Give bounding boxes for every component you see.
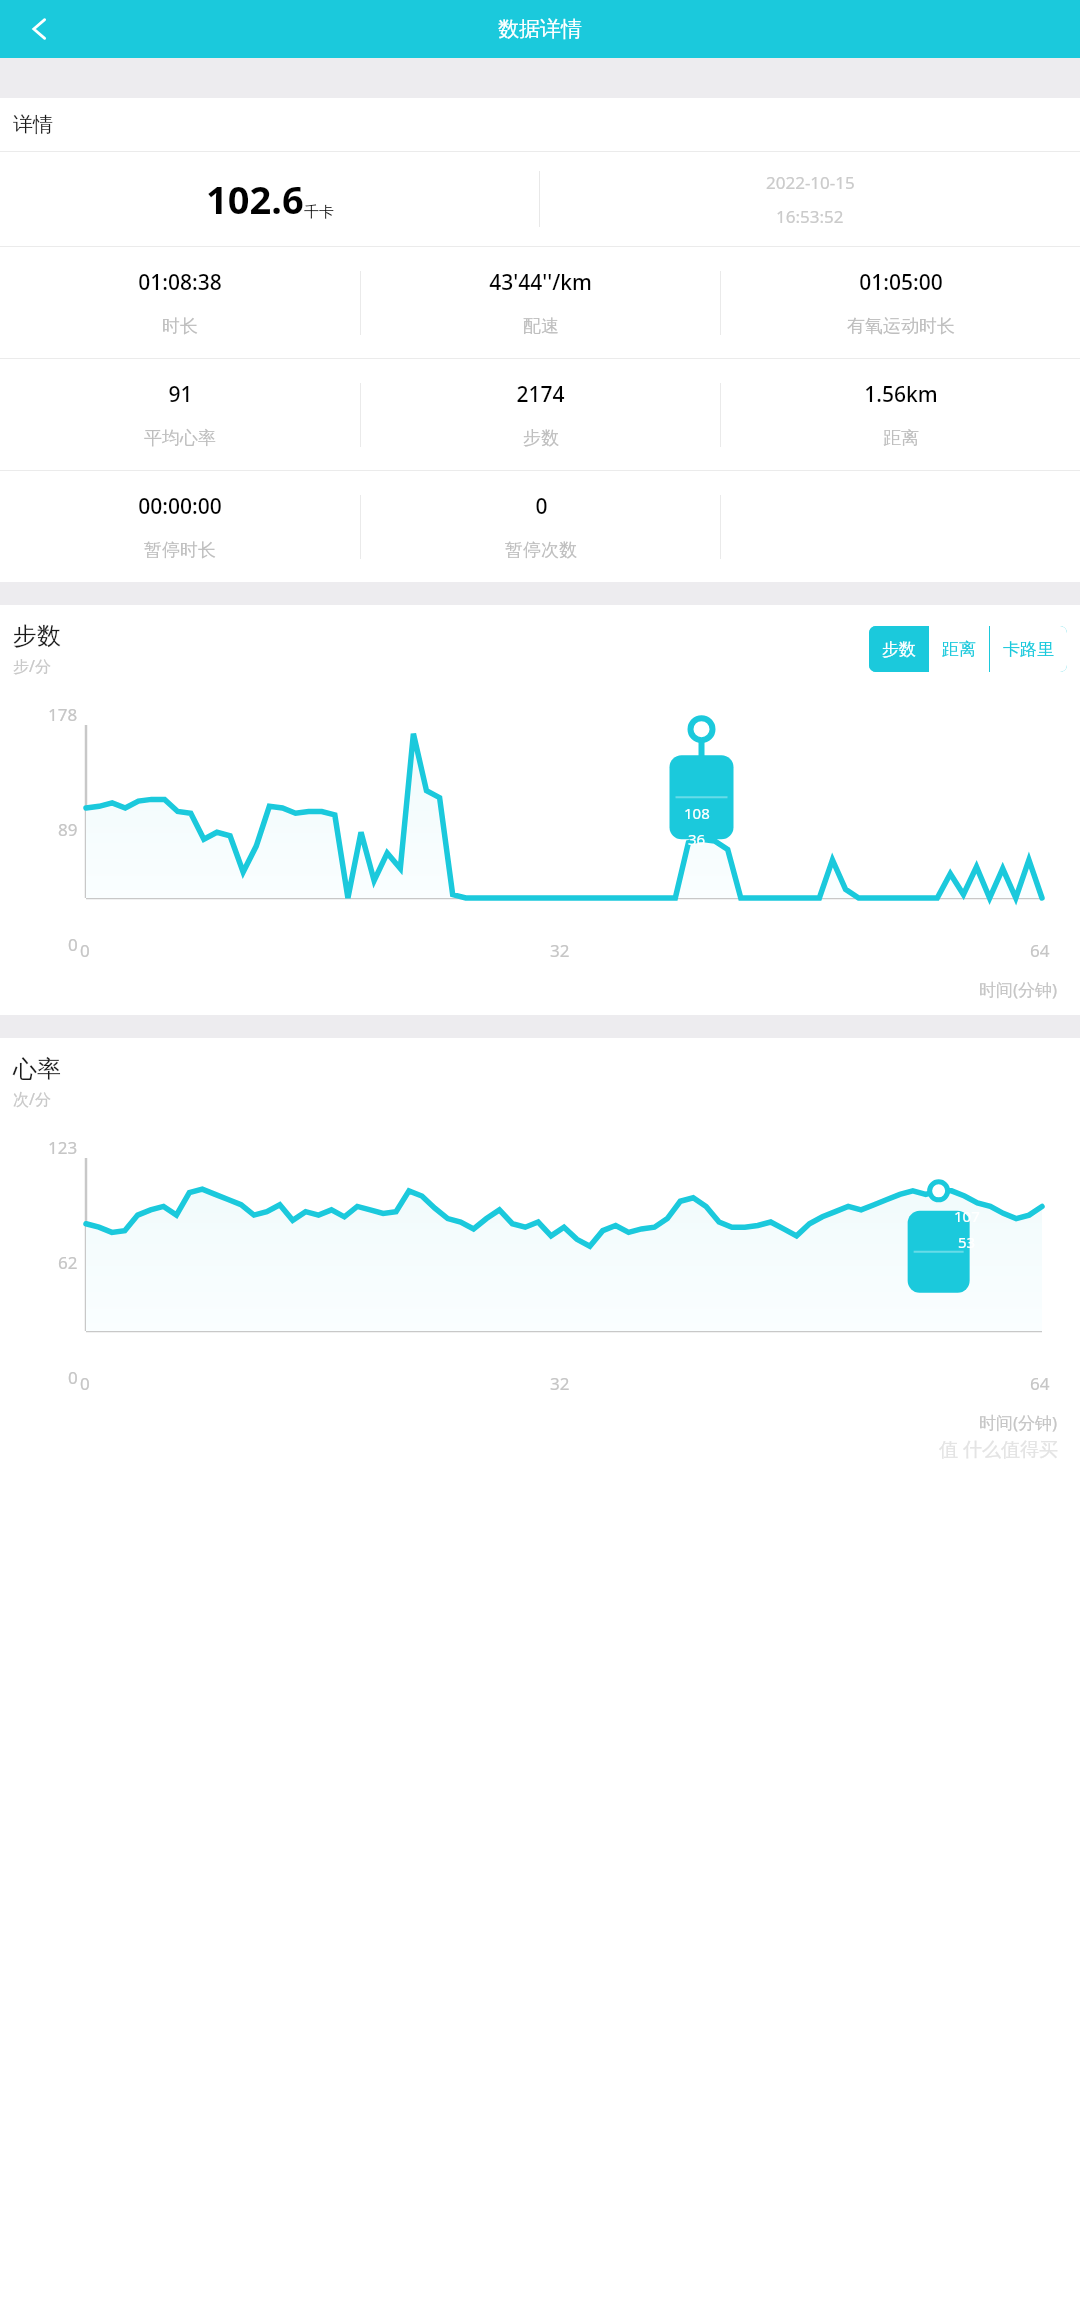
staticText: 步/分 [13, 655, 51, 677]
button[interactable]: Back [14, 3, 66, 55]
staticText: 数据详情 [498, 16, 582, 42]
staticText: 次/分 [13, 1088, 51, 1110]
staticText: 千卡 [304, 203, 334, 222]
staticText: 108 [684, 803, 710, 823]
staticText: 00:00:00 [138, 492, 222, 521]
staticText: 102.6 [206, 173, 304, 225]
staticText: 123 [48, 1136, 78, 1159]
staticText: 2174 [516, 380, 565, 409]
staticText: 步数 [523, 427, 559, 450]
staticText: 暂停次数 [505, 539, 577, 562]
staticText: 平均心率 [144, 427, 216, 450]
staticText: 步数 [882, 639, 916, 660]
staticText: 0 [68, 1366, 78, 1389]
staticText: 有氧运动时长 [847, 315, 955, 338]
staticText: 0 [535, 492, 548, 521]
staticText: 时间(分钟) [979, 978, 1058, 1001]
staticText: 107 [954, 1206, 980, 1226]
staticText: 64 [1030, 1372, 1050, 1395]
staticText: 01:08:38 [138, 268, 222, 297]
staticText: 32 [550, 939, 570, 962]
staticText: 16:53:52 [776, 205, 844, 228]
staticText: 0 [80, 939, 90, 962]
staticText: 暂停时长 [144, 539, 216, 562]
staticText: 1.56km [864, 380, 938, 409]
staticText: 距离 [942, 639, 976, 660]
staticText: 配速 [523, 315, 559, 338]
staticText: 53 [958, 1232, 976, 1252]
button[interactable]: 步数 [869, 626, 929, 672]
staticText: 距离 [883, 427, 919, 450]
staticText: 36 [688, 829, 706, 849]
staticText: 89 [58, 818, 78, 841]
staticText: 步数 [13, 621, 61, 651]
button[interactable]: 卡路里 [990, 626, 1067, 672]
staticText: 32 [550, 1372, 570, 1395]
staticText: 时长 [162, 315, 198, 338]
staticText: 91 [168, 380, 193, 409]
staticText: 值 什么值得买 [939, 1436, 1058, 1462]
staticText: 178 [48, 703, 78, 726]
staticText: 62 [58, 1251, 78, 1274]
staticText: 2022-10-15 [766, 171, 855, 194]
staticText: 43'44''/km [489, 268, 592, 297]
staticText: 0 [68, 933, 78, 956]
staticText: 卡路里 [1003, 639, 1054, 660]
staticText: 心率 [13, 1054, 61, 1084]
staticText: 0 [80, 1372, 90, 1395]
staticText: 详情 [13, 112, 53, 137]
button[interactable]: 距离 [929, 626, 989, 672]
staticText: 64 [1030, 939, 1050, 962]
staticText: 时间(分钟) [979, 1411, 1058, 1434]
staticText: 01:05:00 [859, 268, 943, 297]
